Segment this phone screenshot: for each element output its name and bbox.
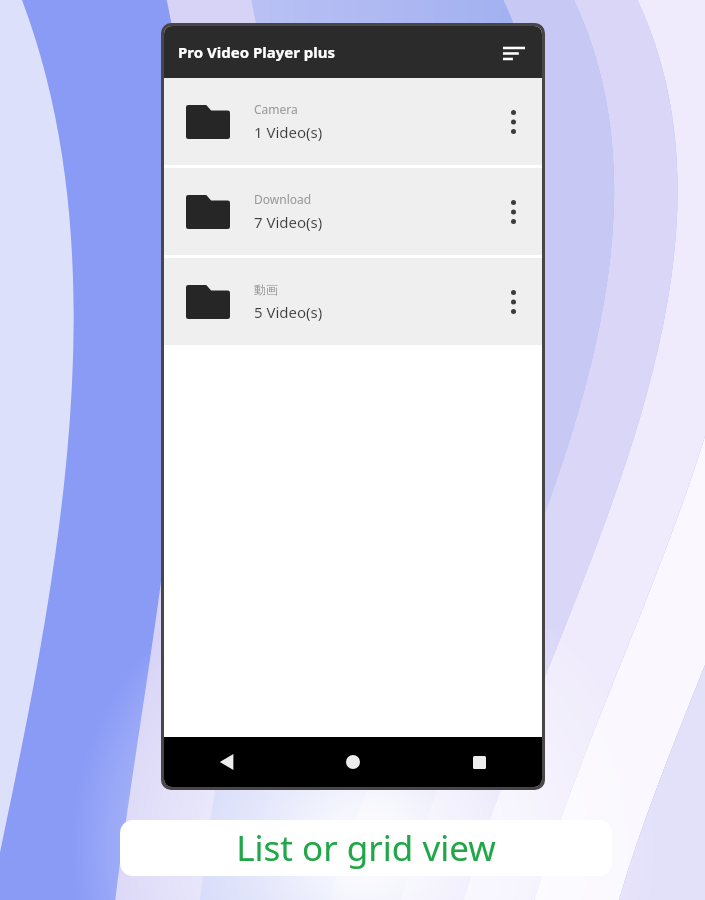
button[interactable]: More options (490, 99, 536, 145)
button[interactable]: 動画 (164, 258, 542, 345)
button[interactable]: Camera (164, 78, 542, 165)
staticText: 動画 (254, 282, 278, 297)
button[interactable]: Sort (494, 32, 534, 72)
staticText: List or grid view (236, 824, 496, 872)
button[interactable]: Download (164, 168, 542, 255)
button[interactable]: Home (290, 737, 416, 787)
button[interactable]: More options (490, 279, 536, 325)
staticText: Download (254, 191, 312, 207)
staticText: 7 Video(s) (254, 212, 323, 232)
staticText: 5 Video(s) (254, 302, 323, 322)
staticText: 1 Video(s) (254, 122, 323, 142)
button[interactable]: Back (164, 737, 290, 787)
staticText: Pro Video Player plus (178, 42, 336, 62)
button[interactable]: Recent apps (416, 737, 542, 787)
button[interactable]: More options (490, 189, 536, 235)
staticText: Camera (254, 101, 298, 117)
